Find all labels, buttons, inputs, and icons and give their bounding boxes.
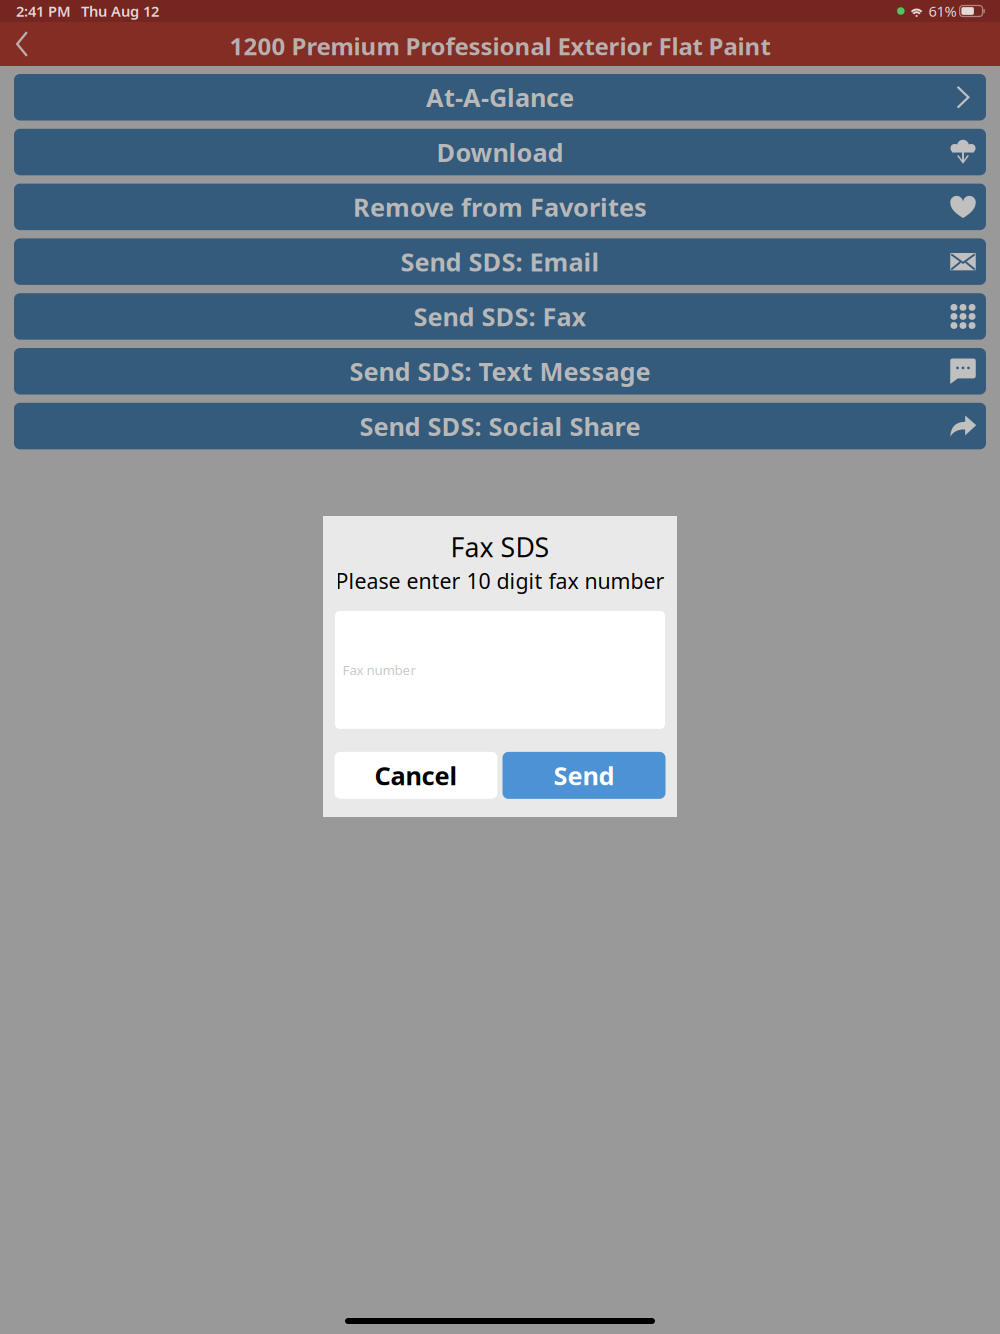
button[interactable]: Back	[0, 22, 44, 66]
staticText: Send	[553, 759, 614, 792]
staticText: Send SDS: Social Share	[359, 409, 640, 443]
staticText: Fax SDS	[450, 529, 549, 564]
button[interactable]: Download	[14, 129, 986, 175]
button[interactable]: Send SDS: Social Share	[14, 403, 986, 449]
staticText: 2:41 PM	[16, 1, 71, 21]
button[interactable]: Fax number	[335, 611, 665, 729]
button[interactable]: Send SDS: Text Message	[14, 348, 986, 394]
button[interactable]: Send SDS: Email	[14, 238, 986, 285]
staticText: Remove from Favorites	[353, 190, 647, 224]
button[interactable]: Send	[502, 752, 665, 799]
button[interactable]: At-A-Glance	[14, 74, 986, 120]
staticText: Cancel	[374, 759, 457, 792]
staticText: 1200 Premium Professional Exterior Flat …	[229, 30, 770, 62]
button[interactable]: Send SDS: Fax	[14, 293, 986, 340]
staticText: Send SDS: Email	[400, 245, 599, 278]
staticText: Fax number	[342, 661, 416, 679]
staticText: At-A-Glance	[426, 80, 574, 114]
staticText: Please enter 10 digit fax number	[335, 566, 664, 595]
staticText: Thu Aug 12	[81, 1, 159, 21]
staticText: Send SDS: Fax	[413, 300, 586, 333]
staticText: 61%	[929, 1, 957, 21]
staticText: Send SDS: Text Message	[349, 354, 650, 388]
button[interactable]: Remove from Favorites	[14, 184, 986, 230]
staticText: Download	[436, 135, 563, 169]
button[interactable]: Cancel	[334, 752, 497, 799]
